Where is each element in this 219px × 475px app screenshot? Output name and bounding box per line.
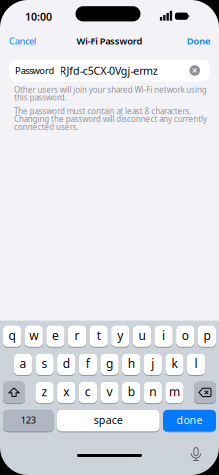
- button[interactable]: e: [46, 325, 64, 348]
- staticText: t: [97, 327, 101, 343]
- button[interactable]: s: [35, 353, 54, 376]
- button[interactable]: y: [111, 325, 129, 348]
- staticText: g: [106, 355, 113, 371]
- button[interactable]: f: [79, 353, 97, 376]
- button[interactable]: Done: [187, 35, 210, 47]
- button[interactable]: d: [57, 353, 75, 376]
- button[interactable]: Delete: [194, 382, 216, 404]
- staticText: v: [106, 384, 112, 400]
- button[interactable]: Cancel: [9, 35, 36, 47]
- staticText: x: [63, 384, 69, 400]
- button[interactable]: Shift: [3, 382, 25, 404]
- staticText: i: [162, 327, 165, 343]
- button[interactable]: p: [198, 325, 216, 348]
- staticText: connected users.: [14, 122, 78, 132]
- staticText: z: [42, 384, 48, 400]
- staticText: p: [203, 327, 210, 343]
- button[interactable]: u: [133, 325, 151, 348]
- button[interactable]: c: [79, 382, 97, 404]
- button[interactable]: n: [144, 382, 162, 404]
- button[interactable]: h: [122, 353, 140, 376]
- staticText: e: [52, 327, 59, 343]
- staticText: r: [74, 327, 79, 343]
- staticText: Other users will join your shared Wi-Fi …: [14, 84, 207, 95]
- button[interactable]: m: [165, 382, 183, 404]
- staticText: l: [195, 355, 198, 371]
- button[interactable]: Clear text: [189, 65, 200, 76]
- button[interactable]: Password: [9, 59, 210, 81]
- staticText: The password must contain at least 8 cha…: [14, 106, 191, 116]
- staticText: k: [171, 355, 177, 371]
- staticText: 10:00: [25, 9, 52, 24]
- button[interactable]: a: [14, 353, 32, 376]
- button[interactable]: w: [25, 325, 43, 348]
- button[interactable]: j: [144, 353, 162, 376]
- staticText: this password.: [14, 92, 67, 103]
- button[interactable]: l: [187, 353, 205, 376]
- button[interactable]: k: [165, 353, 183, 376]
- staticText: m: [169, 384, 180, 400]
- button[interactable]: o: [176, 325, 194, 348]
- staticText: b: [128, 384, 135, 400]
- button[interactable]: 123: [3, 410, 54, 432]
- staticText: q: [9, 327, 16, 343]
- button[interactable]: x: [57, 382, 75, 404]
- staticText: done: [176, 413, 202, 427]
- staticText: RJfd-c5CX-0Vgj-ermz: [60, 63, 158, 78]
- staticText: c: [85, 384, 91, 400]
- staticText: space: [94, 413, 123, 427]
- button[interactable]: g: [100, 353, 119, 376]
- staticText: o: [182, 327, 189, 343]
- button[interactable]: done: [163, 410, 216, 432]
- staticText: 123: [21, 414, 36, 426]
- staticText: Changing the password will disconnect an…: [14, 114, 207, 124]
- staticText: Password: [15, 64, 55, 77]
- button[interactable]: t: [90, 325, 108, 348]
- staticText: d: [63, 355, 70, 371]
- staticText: f: [86, 355, 90, 371]
- button[interactable]: space: [57, 410, 160, 432]
- button[interactable]: r: [68, 325, 86, 348]
- staticText: a: [19, 355, 26, 371]
- button[interactable]: z: [35, 382, 54, 404]
- button[interactable]: v: [100, 382, 119, 404]
- staticText: s: [42, 355, 48, 371]
- staticText: Wi-Fi Password: [76, 35, 142, 47]
- button[interactable]: Dictation: [190, 447, 201, 461]
- staticText: Cancel: [9, 35, 36, 47]
- staticText: Done: [187, 35, 210, 47]
- staticText: w: [29, 327, 38, 343]
- button[interactable]: i: [154, 325, 173, 348]
- staticText: u: [138, 327, 145, 343]
- button[interactable]: q: [3, 325, 21, 348]
- staticText: n: [149, 384, 156, 400]
- button[interactable]: b: [122, 382, 140, 404]
- staticText: y: [117, 327, 123, 343]
- staticText: h: [128, 355, 135, 371]
- staticText: j: [151, 355, 154, 371]
